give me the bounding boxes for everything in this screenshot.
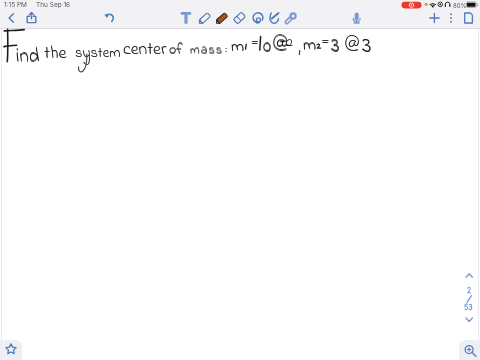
staticText: @ [345, 34, 360, 60]
staticText: system [75, 43, 121, 64]
button[interactable]: Eraser [231, 12, 247, 28]
staticText: 0 [263, 34, 272, 62]
staticText: = [321, 30, 329, 53]
staticText: @ [345, 34, 360, 60]
staticText: @ [273, 33, 288, 59]
staticText: = [251, 31, 259, 54]
button[interactable]: Undo [100, 12, 116, 28]
staticText: : [226, 38, 228, 60]
button[interactable]: Laser pointer [282, 12, 298, 28]
button[interactable]: Bookmark [0, 340, 22, 360]
staticText: 2 [286, 33, 293, 53]
button[interactable]: Zoom [459, 340, 480, 360]
staticText: m [231, 34, 245, 59]
button[interactable]: Previous page [461, 270, 478, 282]
staticText: 53 [464, 303, 473, 311]
staticText: m [303, 33, 317, 58]
button[interactable]: Pen tool [196, 12, 212, 28]
button[interactable]: Add [426, 12, 442, 28]
staticText: 80% [453, 2, 467, 9]
staticText: : [225, 38, 227, 60]
staticText: 2 [286, 33, 293, 53]
button[interactable]: Shape tool [266, 12, 282, 28]
staticText: ind [16, 44, 40, 72]
button[interactable]: Back [4, 12, 20, 28]
button[interactable]: Next page [461, 313, 478, 325]
staticText: of [169, 40, 183, 60]
staticText: = [322, 30, 330, 53]
staticText: m [231, 34, 245, 59]
staticText: m [303, 32, 317, 57]
staticText: of [169, 39, 183, 59]
button[interactable]: Microphone [348, 12, 364, 28]
staticText: system [75, 43, 121, 64]
staticText: @ [273, 34, 288, 60]
staticText: 3 [331, 32, 340, 63]
button[interactable]: Share [22, 12, 38, 28]
staticText: mass [190, 42, 224, 60]
staticText: = [251, 31, 259, 54]
staticText: Thu Sep 16 [36, 1, 71, 9]
staticText: 3 [362, 30, 372, 64]
staticText: 0 [263, 33, 272, 61]
button[interactable]: Pages [460, 12, 476, 28]
staticText: the [44, 41, 67, 67]
staticText: mass [190, 41, 224, 59]
staticText: center [123, 37, 167, 63]
button[interactable]: More options [443, 12, 459, 28]
button[interactable]: Highlighter [213, 12, 229, 28]
button[interactable]: Lasso [249, 12, 265, 28]
staticText: the [44, 41, 67, 67]
staticText: 3 [362, 30, 372, 64]
staticText: 2 [467, 286, 472, 294]
staticText: 3 [331, 31, 340, 62]
staticText: center [123, 37, 167, 63]
staticText: , [298, 36, 301, 59]
staticText: ind [16, 43, 40, 71]
staticText: 1:15 PM [4, 1, 27, 9]
staticText: , [298, 36, 301, 59]
button[interactable]: Text tool [177, 12, 193, 28]
